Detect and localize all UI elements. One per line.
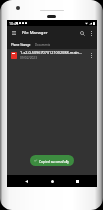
staticText: Phone Storage [11, 43, 31, 47]
button[interactable]: Back [22, 177, 31, 186]
staticText: Documents [35, 43, 51, 47]
button[interactable]: Search [77, 28, 87, 38]
button[interactable]: Item options [87, 51, 95, 59]
staticText: 10:45 [9, 21, 19, 26]
button[interactable]: Recents [73, 177, 82, 186]
button[interactable]: Documents [34, 41, 52, 49]
button[interactable]: Home [48, 177, 57, 186]
button[interactable]: More options [87, 29, 96, 38]
button[interactable]: 1-s2.0-S0967070121002088-main... [7, 49, 97, 61]
staticText: 1-s2.0-S0967070121002088-main... [20, 50, 82, 55]
button[interactable]: Menu [9, 28, 19, 38]
staticText: Copied successfully [39, 159, 70, 163]
button[interactable]: Copied successfully [30, 155, 74, 166]
staticText: 09/02/2023 [20, 56, 37, 60]
button[interactable]: Phone Storage [10, 41, 32, 49]
staticText: File Manager [22, 30, 48, 36]
